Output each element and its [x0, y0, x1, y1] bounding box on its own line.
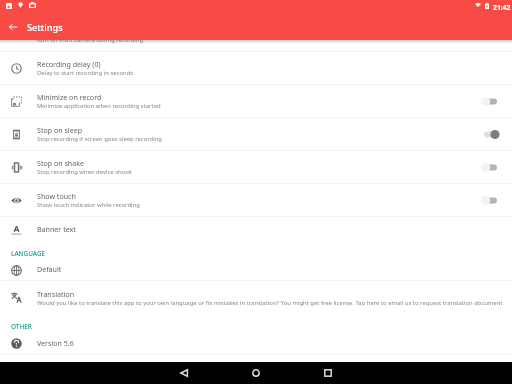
staticText: Minimize on record	[37, 92, 102, 102]
staticText: Translation	[37, 289, 75, 299]
staticText: Stop on shake	[37, 158, 85, 168]
button[interactable]: Stop on shake	[0, 151, 512, 184]
staticText: Settings	[27, 21, 63, 34]
button[interactable]: Show touch	[0, 184, 512, 217]
staticText: Minimize application when recording star…	[37, 102, 161, 110]
button[interactable]: Version 5.6	[0, 332, 512, 355]
staticText: Show touch indicator while recording	[37, 201, 140, 209]
staticText: Default	[37, 264, 62, 274]
staticText: Delay to start recording in seconds	[37, 69, 134, 77]
button[interactable]: Banner text	[0, 216, 512, 244]
staticText: LANGUAGE	[11, 249, 46, 258]
staticText: OTHER	[11, 322, 32, 331]
staticText: Stop recording when device shook	[37, 168, 132, 176]
button[interactable]: Turn on front camera during recording	[0, 40, 512, 52]
staticText: Recording delay (0)	[37, 59, 101, 69]
staticText: Version 5.6	[37, 338, 74, 348]
button[interactable]: Minimize on record	[0, 85, 512, 118]
button[interactable]: Stop on sleep	[0, 118, 512, 151]
staticText: 21:42	[493, 3, 511, 12]
button[interactable]: Recording delay (0)	[0, 52, 512, 85]
staticText: Show touch	[37, 191, 76, 201]
button[interactable]: Recents	[308, 362, 348, 384]
staticText: Stop on sleep	[37, 125, 83, 135]
button[interactable]: Default	[0, 259, 512, 281]
button[interactable]: Back	[1, 14, 25, 40]
button[interactable]: Home	[236, 362, 276, 384]
staticText: Turn on front camera during recording	[36, 36, 144, 44]
staticText: Banner text	[37, 224, 76, 234]
button[interactable]: Translation	[0, 281, 512, 314]
staticText: Would you like to translate this app to …	[37, 299, 503, 307]
staticText: Stop recording if screen goes sleep reco…	[37, 135, 162, 143]
button[interactable]: Back	[164, 362, 204, 384]
